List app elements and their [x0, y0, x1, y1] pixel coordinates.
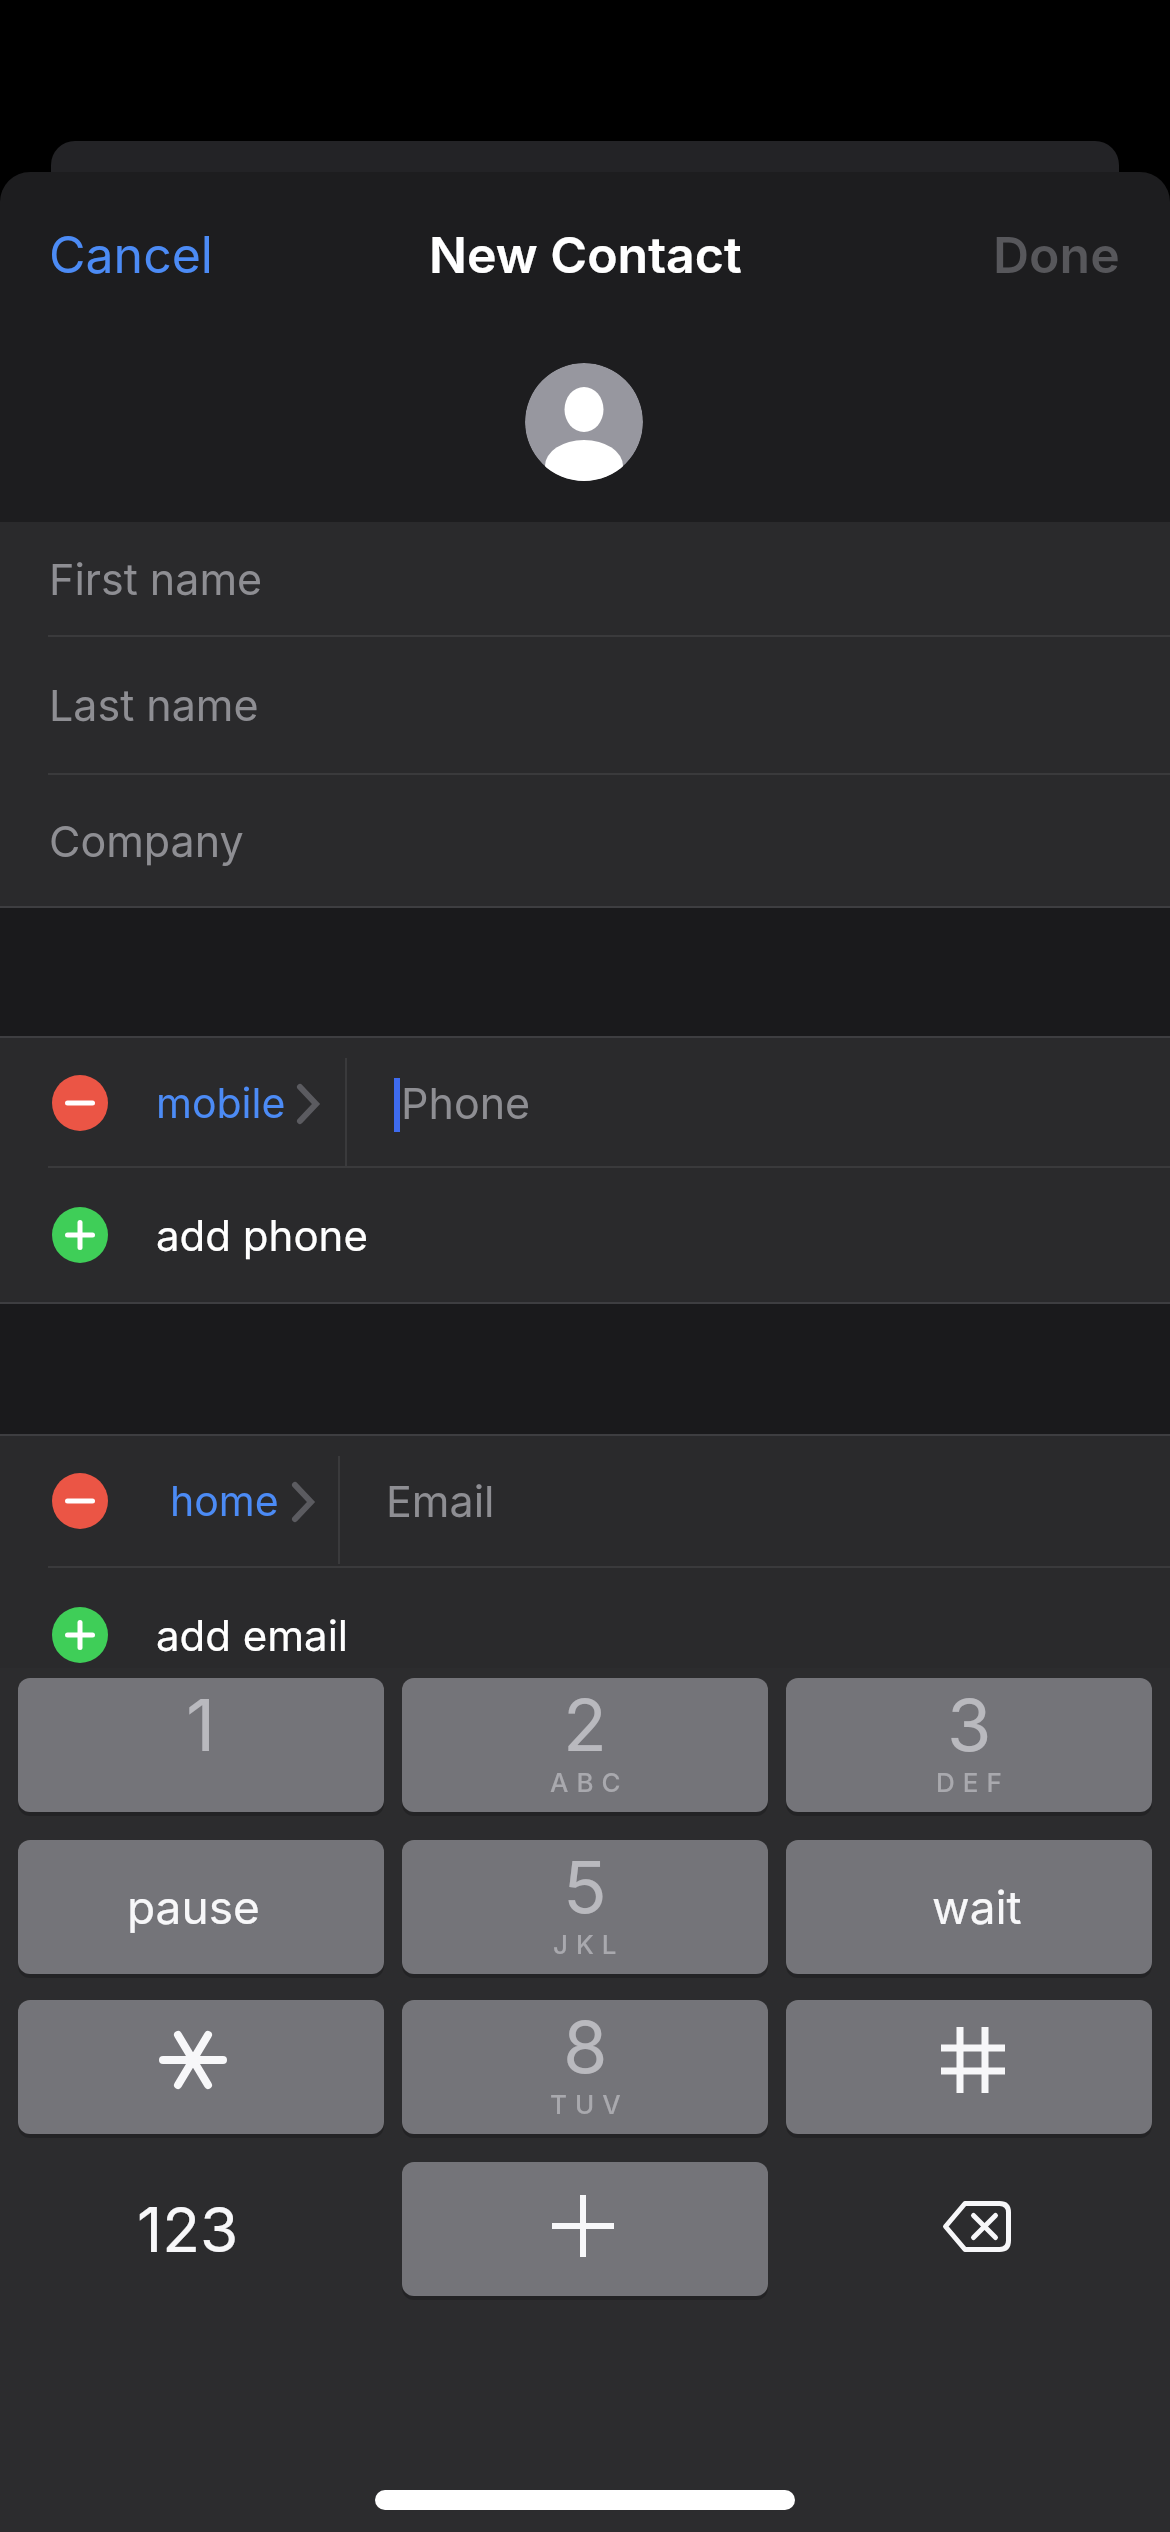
staticText: 5	[563, 1843, 607, 1930]
staticText: Last name	[49, 679, 259, 731]
button[interactable]: First name	[0, 522, 1170, 635]
staticText: New Contact	[429, 225, 742, 285]
staticText: wait	[932, 1879, 1022, 1935]
staticText: Email	[386, 1475, 495, 1527]
button[interactable]	[0, 1568, 1170, 1668]
button[interactable]: Company	[0, 775, 1170, 906]
button[interactable]	[402, 2162, 768, 2296]
button[interactable]: 8	[402, 2000, 768, 2134]
button[interactable]	[18, 2000, 384, 2134]
staticText: 123	[137, 2192, 239, 2267]
staticText: First name	[49, 553, 263, 605]
button[interactable]: 2	[402, 1678, 768, 1812]
staticText: 1	[186, 1681, 216, 1768]
staticText: JKL	[553, 1929, 625, 1960]
staticText: ABC	[550, 1767, 629, 1798]
button[interactable]: pause	[18, 1840, 384, 1974]
button[interactable]: Done	[880, 215, 1120, 295]
staticText: 3	[947, 1681, 992, 1768]
staticText: 2	[563, 1681, 607, 1768]
button[interactable]: wait	[786, 1840, 1152, 1974]
staticText: add phone	[156, 1210, 368, 1261]
staticText: Phone	[401, 1077, 531, 1129]
button[interactable]: Last name	[0, 637, 1170, 773]
button[interactable]	[0, 1038, 1170, 1166]
button[interactable]	[0, 1168, 1170, 1302]
staticText: TUV	[550, 2089, 629, 2120]
staticText: home	[170, 1476, 279, 1526]
staticText: Cancel	[49, 225, 213, 285]
button[interactable]: Cancel	[30, 215, 270, 295]
button[interactable]	[786, 2000, 1152, 2134]
staticText: DEF	[936, 1767, 1010, 1798]
staticText: Done	[993, 225, 1120, 285]
button[interactable]: 5	[402, 1840, 768, 1974]
staticText: mobile	[156, 1078, 286, 1128]
button[interactable]	[827, 2162, 1127, 2290]
button[interactable]	[0, 1436, 1170, 1566]
staticText: 8	[563, 2003, 608, 2090]
staticText: add email	[156, 1610, 349, 1661]
button[interactable]: 1	[18, 1678, 384, 1812]
button[interactable]: 3	[786, 1678, 1152, 1812]
button[interactable]: 123	[38, 2162, 338, 2296]
staticText: pause	[127, 1879, 260, 1935]
staticText: Company	[49, 815, 244, 867]
